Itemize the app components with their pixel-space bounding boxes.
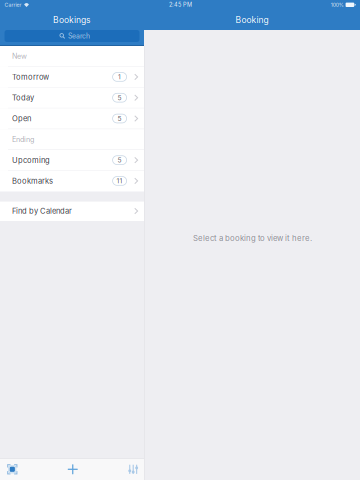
staticText: 100% [331, 2, 344, 8]
button[interactable]: Tomorrow [0, 67, 144, 88]
staticText: New [12, 52, 27, 60]
staticText: Search [68, 32, 90, 40]
staticText: 5 [118, 156, 122, 164]
staticText: 5 [118, 114, 122, 123]
button[interactable]: New booking [60, 459, 85, 480]
button[interactable]: Bookmarks [0, 171, 144, 192]
staticText: Select a booking to view it here. [193, 234, 312, 243]
staticText: 11 [117, 177, 123, 185]
button[interactable]: Search [4, 30, 139, 42]
button[interactable]: Find by Calendar [0, 202, 144, 221]
staticText: Open [12, 114, 31, 123]
staticText: Carrier [4, 2, 21, 8]
button[interactable]: Filter [121, 459, 145, 480]
staticText: Bookmarks [12, 176, 53, 185]
staticText: Tomorrow [12, 72, 49, 81]
staticText: Find by Calendar [12, 206, 72, 216]
staticText: Upcoming [12, 155, 50, 165]
staticText: 2:45 PM [169, 1, 192, 8]
staticText: 1 [118, 73, 121, 81]
button[interactable]: Scan [0, 459, 25, 480]
staticText: Ending [12, 135, 34, 144]
staticText: Today [12, 93, 34, 102]
staticText: Booking [235, 15, 268, 25]
staticText: 5 [118, 94, 122, 102]
button[interactable]: Today [0, 88, 144, 108]
button[interactable]: Upcoming [0, 150, 144, 171]
button[interactable]: Open [0, 108, 144, 129]
staticText: Bookings [53, 15, 91, 25]
